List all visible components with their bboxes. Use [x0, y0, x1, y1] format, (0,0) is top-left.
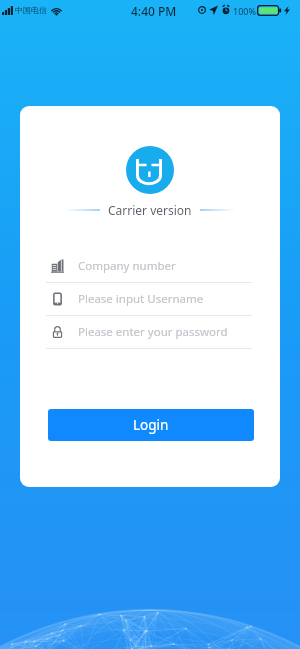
- staticText: Please enter your password: [78, 324, 228, 340]
- button[interactable]: Company number: [46, 250, 252, 282]
- staticText: 中国电信: [15, 5, 47, 15]
- button[interactable]: Please enter your password: [46, 316, 252, 348]
- staticText: Carrier version: [108, 202, 192, 218]
- staticText: 100%: [233, 5, 256, 17]
- staticText: 4:40 PM: [131, 3, 177, 19]
- staticText: Login: [133, 416, 169, 434]
- button[interactable]: Please input Username: [46, 283, 252, 315]
- staticText: Company number: [78, 258, 176, 274]
- button[interactable]: Login: [48, 409, 254, 441]
- staticText: Please input Username: [78, 291, 204, 307]
